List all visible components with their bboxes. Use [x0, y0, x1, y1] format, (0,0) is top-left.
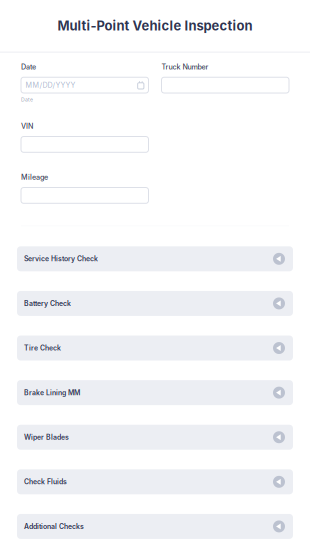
staticText: Service History Check	[24, 255, 98, 263]
staticText: Battery Check	[24, 299, 71, 308]
button[interactable]: Wiper Blades	[17, 425, 293, 450]
staticText: MM/DD/YYYY	[25, 81, 75, 89]
staticText: Mileage	[21, 173, 48, 181]
button[interactable]: Check Fluids	[17, 469, 293, 494]
staticText: Wiper Blades	[24, 433, 69, 441]
staticText: Check Fluids	[24, 478, 67, 486]
staticText: Date	[21, 96, 33, 103]
staticText: Date	[21, 62, 36, 71]
staticText: Tire Check	[24, 344, 61, 352]
staticText: Multi-Point Vehicle Inspection	[57, 18, 252, 33]
button[interactable]: Service History Check	[17, 246, 293, 271]
staticText: Additional Checks	[24, 522, 84, 531]
button[interactable]: Battery Check	[17, 291, 293, 316]
staticText: Brake Lining MM	[24, 388, 80, 397]
button[interactable]: Additional Checks	[17, 514, 293, 539]
button[interactable]: Brake Lining MM	[17, 380, 293, 405]
staticText: VIN	[21, 122, 33, 130]
button[interactable]: Tire Check	[17, 335, 293, 360]
staticText: Truck Number	[161, 62, 208, 71]
